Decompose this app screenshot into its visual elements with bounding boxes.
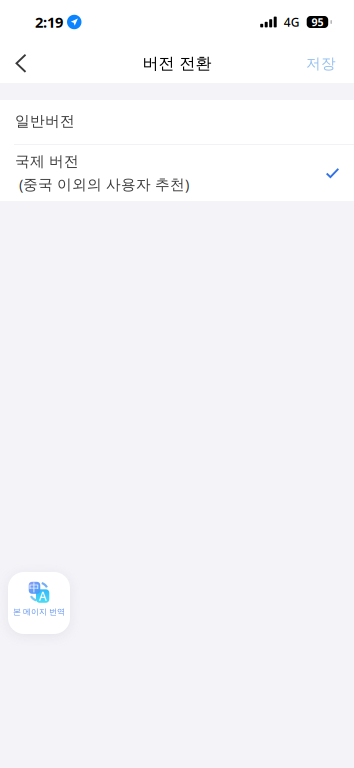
staticText: 버전 전환 (142, 54, 211, 73)
staticText: 95 (311, 15, 323, 29)
staticText: 본 메이지 번역 (13, 607, 65, 617)
staticText: 2:19 (35, 12, 63, 32)
staticText: 4G (284, 14, 300, 30)
staticText: 中 (29, 581, 40, 594)
button[interactable]: 국제 버전 (0, 145, 354, 201)
staticText: (중국 이외의 사용자 추천) (15, 174, 189, 194)
button[interactable]: 본 메이지 번역 (8, 572, 70, 634)
staticText: 국제 버전 (15, 152, 79, 170)
button[interactable]: Back (0, 44, 42, 83)
staticText: 일반버전 (15, 112, 75, 130)
button[interactable]: 저장 (306, 44, 354, 83)
staticText: A (39, 588, 47, 604)
staticText: 저장 (306, 54, 336, 72)
button[interactable]: 일반버전 (0, 100, 354, 144)
